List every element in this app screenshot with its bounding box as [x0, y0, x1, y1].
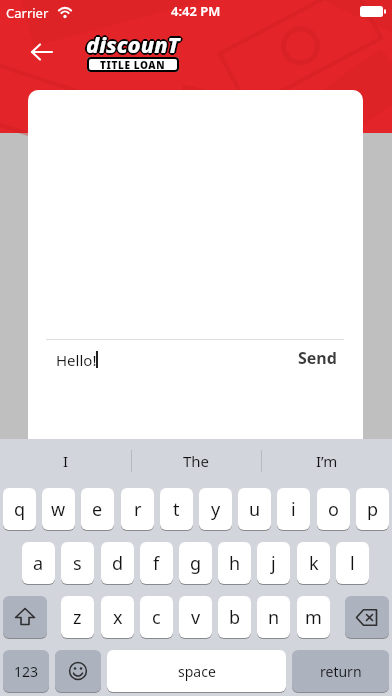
staticText: discounT — [86, 31, 180, 61]
staticText: s — [73, 551, 82, 576]
staticText: m — [305, 605, 322, 630]
button[interactable]: q — [3, 488, 36, 530]
button[interactable] — [345, 596, 389, 638]
button[interactable]: 123 — [3, 650, 49, 692]
staticText: I — [63, 451, 69, 471]
staticText: n — [268, 605, 280, 630]
button[interactable]: k — [297, 542, 330, 584]
staticText: a — [33, 551, 44, 576]
staticText: Carrier — [6, 4, 49, 22]
button[interactable]: v — [179, 596, 212, 638]
staticText: h — [229, 551, 241, 576]
staticText: discounT — [86, 27, 180, 57]
button[interactable]: i — [277, 488, 310, 530]
staticText: j — [271, 551, 276, 576]
button[interactable]: u — [238, 488, 271, 530]
button[interactable]: t — [160, 488, 193, 530]
staticText: discounT — [85, 30, 179, 60]
staticText: f — [153, 551, 160, 576]
staticText: discounT — [88, 29, 182, 59]
button[interactable]: h — [218, 542, 251, 584]
button[interactable]: l — [336, 542, 369, 584]
button[interactable]: z — [61, 596, 94, 638]
button[interactable]: o — [317, 488, 350, 530]
staticText: 123 — [14, 662, 39, 681]
staticText: z — [73, 605, 82, 630]
staticText: return — [320, 662, 362, 681]
staticText: TITLE LOAN — [100, 58, 166, 72]
staticText: I’m — [316, 451, 338, 471]
button[interactable]: w — [42, 488, 75, 530]
button[interactable]: I’m — [261, 444, 392, 478]
staticText: k — [309, 551, 319, 576]
button[interactable]: n — [257, 596, 290, 638]
staticText: e — [92, 497, 103, 522]
button[interactable] — [55, 650, 101, 692]
staticText: t — [173, 497, 180, 522]
button[interactable]: a — [22, 542, 55, 584]
staticText: 4:42 PM — [171, 2, 221, 20]
staticText: l — [350, 551, 355, 576]
staticText: discounT — [85, 28, 179, 58]
staticText: p — [367, 497, 379, 522]
staticText: g — [190, 551, 202, 576]
staticText: discounT — [87, 30, 181, 60]
button[interactable]: x — [101, 596, 134, 638]
staticText: o — [328, 497, 339, 522]
staticText: The — [183, 451, 210, 471]
staticText: w — [51, 497, 66, 522]
button[interactable]: The — [131, 444, 261, 478]
button[interactable]: b — [218, 596, 251, 638]
button[interactable]: d — [101, 542, 134, 584]
staticText: c — [152, 605, 161, 630]
button[interactable]: I — [0, 444, 131, 478]
staticText: d — [112, 551, 124, 576]
staticText: b — [229, 605, 241, 630]
staticText: Hello! — [56, 350, 97, 370]
button[interactable]: c — [140, 596, 173, 638]
button[interactable]: e — [81, 488, 114, 530]
staticText: i — [291, 497, 296, 522]
staticText: y — [211, 497, 221, 522]
button[interactable]: m — [297, 596, 330, 638]
button[interactable]: r — [121, 488, 154, 530]
button[interactable]: return — [292, 650, 389, 692]
button[interactable] — [22, 34, 62, 70]
button[interactable]: g — [179, 542, 212, 584]
staticText: Send — [298, 347, 337, 369]
button[interactable] — [3, 596, 47, 638]
button[interactable]: p — [356, 488, 389, 530]
button[interactable]: Send — [280, 342, 355, 374]
button[interactable]: j — [257, 542, 290, 584]
button[interactable]: f — [140, 542, 173, 584]
staticText: discounT — [86, 29, 180, 59]
button[interactable]: s — [61, 542, 94, 584]
staticText: x — [113, 605, 123, 630]
staticText: v — [191, 605, 201, 630]
staticText: q — [14, 497, 26, 522]
button[interactable]: y — [199, 488, 232, 530]
button[interactable]: space — [107, 650, 286, 692]
staticText: discounT — [87, 28, 181, 58]
staticText: discounT — [84, 29, 178, 59]
staticText: r — [134, 497, 142, 522]
staticText: u — [249, 497, 261, 522]
staticText: space — [178, 662, 216, 681]
